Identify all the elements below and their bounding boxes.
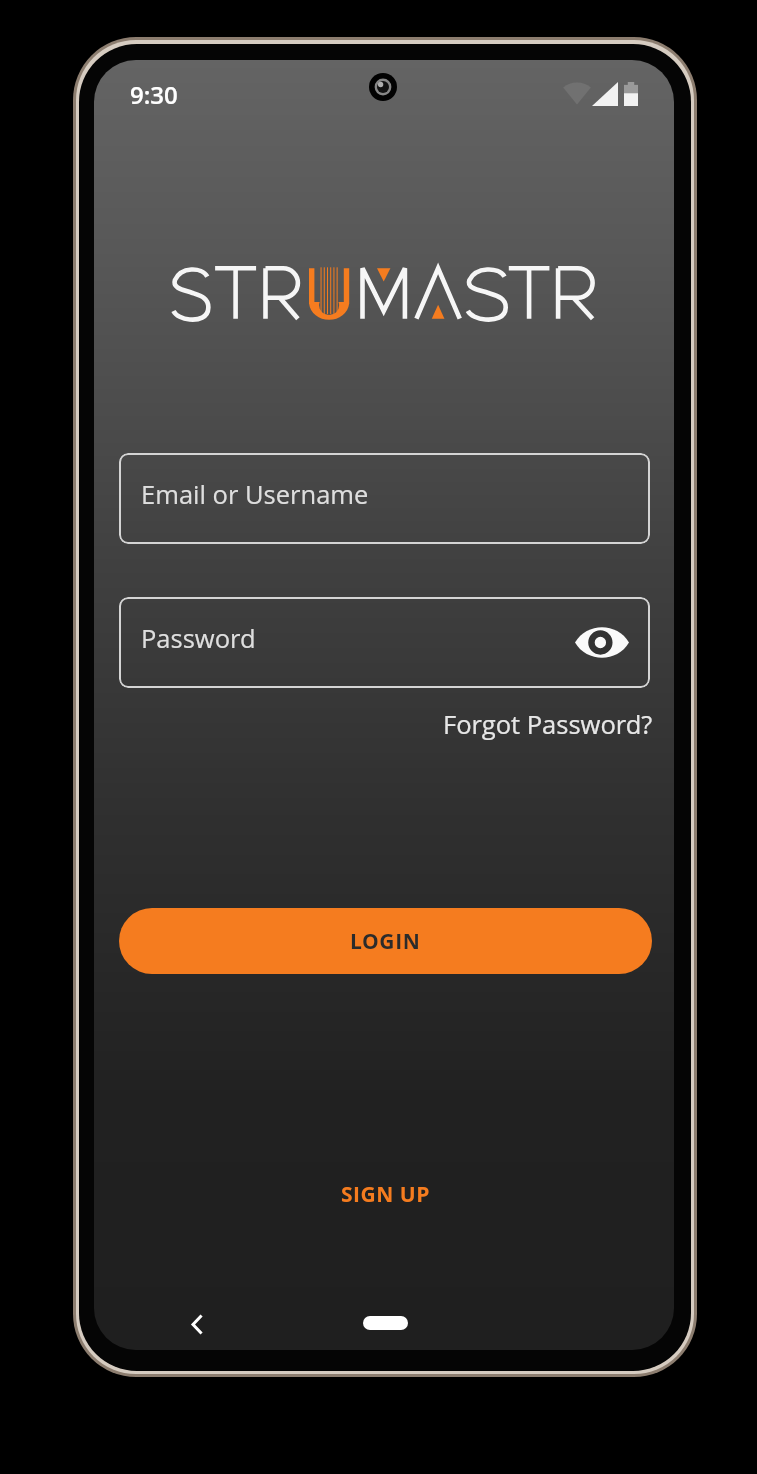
staticText: Password xyxy=(141,621,256,656)
button[interactable]: Back xyxy=(183,1310,212,1339)
button[interactable]: Email or Username xyxy=(119,453,650,544)
button[interactable]: Password xyxy=(119,597,650,688)
staticText: 9:30 xyxy=(130,78,178,111)
staticText: SIGN UP xyxy=(341,1180,430,1209)
other: Show password xyxy=(575,625,629,660)
staticText: LOGIN xyxy=(350,927,421,956)
button[interactable]: LOGIN xyxy=(119,908,652,974)
button[interactable]: SIGN UP xyxy=(333,1172,438,1217)
button[interactable]: Home xyxy=(363,1316,408,1330)
button[interactable]: Forgot Password? xyxy=(437,701,659,748)
staticText: Forgot Password? xyxy=(443,707,653,742)
staticText: Email or Username xyxy=(141,477,369,512)
